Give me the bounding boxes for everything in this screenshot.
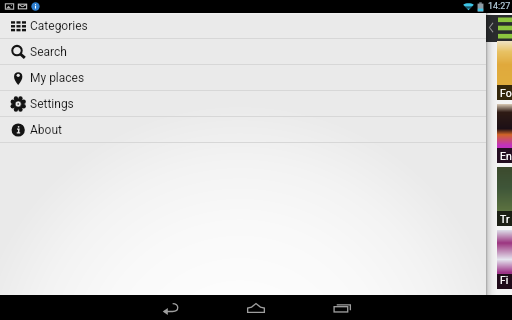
button[interactable]: Back [159,297,181,319]
button[interactable]: Open navigation menu [498,16,512,39]
staticText: Settings [30,97,74,111]
button[interactable]: Settings [0,91,486,117]
staticText: My places [30,71,85,85]
button[interactable]: En [497,104,512,163]
button[interactable]: About [0,117,486,143]
staticText: Fo [500,87,512,99]
staticText: Categories [30,19,88,33]
button[interactable]: Recent apps [331,297,353,319]
button[interactable]: Back [488,21,494,34]
button[interactable]: Home [245,297,267,319]
staticText: Fin [500,274,512,289]
button[interactable]: Fin [497,230,512,289]
button[interactable]: Fo [497,41,512,100]
staticText: En [500,150,512,162]
button[interactable]: Search [0,39,486,65]
staticText: About [30,123,62,137]
button[interactable]: My places [0,65,486,91]
staticText: Search [30,45,67,59]
button[interactable]: Tr [497,167,512,226]
staticText: 14:27 [488,1,511,12]
button[interactable]: Categories [0,13,486,39]
staticText: Tr [500,213,510,225]
